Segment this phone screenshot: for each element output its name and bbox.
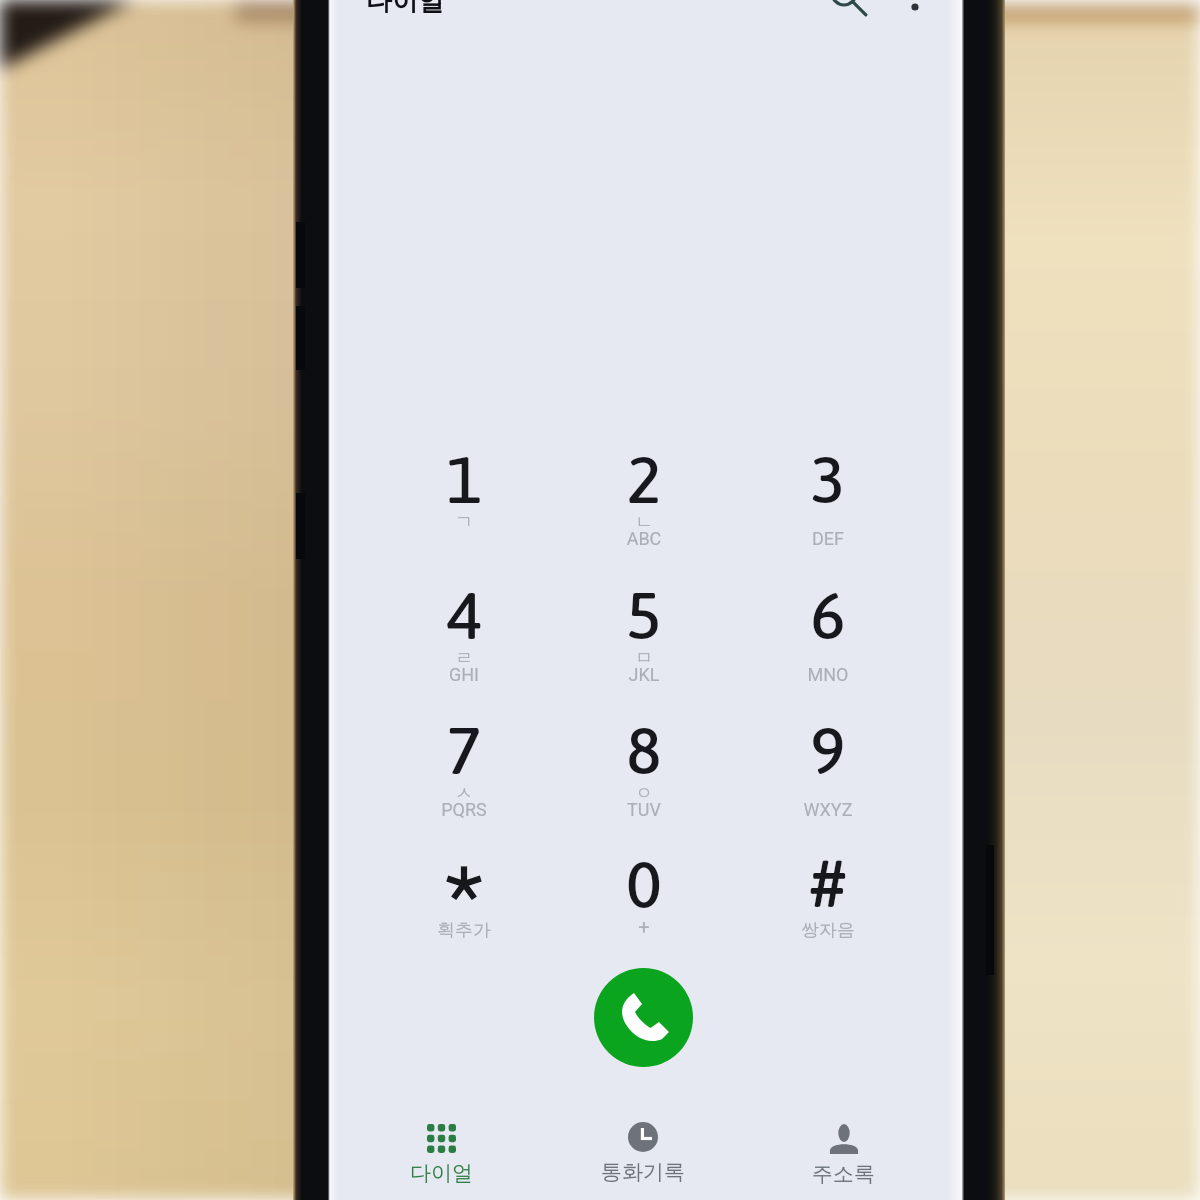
staticText: DEF (753, 528, 903, 549)
staticText: GHI (389, 664, 539, 685)
button[interactable]: 6 (753, 569, 903, 701)
button[interactable]: Call (594, 968, 693, 1067)
staticText: + (569, 915, 719, 938)
staticText: # (753, 843, 903, 921)
staticText: ㄹ (389, 647, 539, 670)
button[interactable]: 다이얼 (366, 0, 486, 18)
staticText: 통화기록 (601, 1159, 685, 1185)
staticText: TUV (569, 799, 719, 820)
button[interactable]: More options (885, 0, 945, 7)
staticText: 8 (569, 712, 719, 788)
staticText: 9 (753, 712, 903, 788)
button[interactable]: 4 (389, 569, 539, 701)
button[interactable]: 7 (389, 704, 539, 836)
button[interactable]: 0 (569, 838, 719, 970)
staticText: 2 (569, 441, 719, 517)
staticText: 4 (389, 577, 539, 653)
button[interactable]: 주소록 (763, 1108, 923, 1200)
button[interactable]: 5 (569, 569, 719, 701)
staticText: 5 (569, 577, 719, 653)
staticText: JKL (569, 664, 719, 685)
staticText: WXYZ (753, 799, 903, 820)
staticText: 다이얼 (366, 0, 444, 18)
button[interactable]: 다이얼 (361, 1108, 521, 1200)
staticText: ㅅ (389, 782, 539, 805)
button[interactable]: 8 (569, 704, 719, 836)
staticText: 0 (569, 846, 719, 922)
button[interactable]: 통화기록 (563, 1106, 723, 1198)
staticText: 1 (389, 441, 539, 517)
staticText: 6 (753, 577, 903, 653)
staticText: ㅇ (569, 782, 719, 805)
staticText: 쌍자음 (753, 919, 903, 942)
button[interactable]: 2 (569, 433, 719, 565)
staticText: 주소록 (812, 1161, 875, 1187)
staticText: 획추가 (389, 919, 539, 942)
button[interactable]: 3 (753, 433, 903, 565)
staticText: ㅁ (569, 647, 719, 670)
staticText: 7 (389, 712, 539, 788)
button[interactable]: # (753, 838, 903, 970)
button[interactable]: Search (814, 0, 874, 23)
button[interactable]: 획추가 (389, 838, 539, 970)
staticText: ABC (569, 528, 719, 549)
button[interactable]: 1 (389, 433, 539, 565)
staticText: ㄴ (569, 511, 719, 534)
staticText: ㄱ (389, 511, 539, 534)
staticText: PQRS (389, 799, 539, 820)
button[interactable]: 9 (753, 704, 903, 836)
staticText: 다이얼 (410, 1160, 473, 1186)
staticText: MNO (753, 664, 903, 685)
staticText: 3 (753, 441, 903, 517)
